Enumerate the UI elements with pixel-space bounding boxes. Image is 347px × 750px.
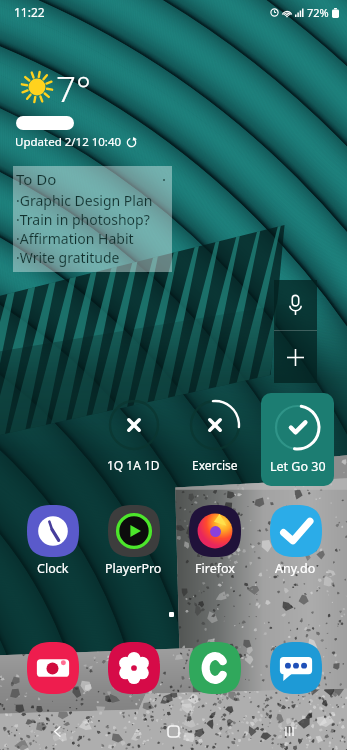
button[interactable]: 1Q 1A 1D xyxy=(93,399,174,473)
staticText: 1Q 1A 1D xyxy=(107,457,160,473)
button[interactable]: Let Go 30 xyxy=(261,393,334,486)
staticText: ·Graphic Design Plan xyxy=(16,191,153,210)
staticText: 11:22 xyxy=(14,4,45,20)
button[interactable]: Phone xyxy=(174,642,255,694)
button[interactable]: To Do xyxy=(13,166,172,272)
button[interactable]: Messages xyxy=(255,642,336,694)
button[interactable]: Voice search xyxy=(274,280,317,330)
staticText: Exercise xyxy=(192,457,238,473)
staticText: To Do xyxy=(16,169,57,189)
button[interactable]: 7° xyxy=(56,65,91,113)
staticText: ·Affirmation Habit xyxy=(16,229,134,248)
staticText: ·Train in photoshop? xyxy=(16,210,150,229)
button[interactable]: PlayerPro xyxy=(93,505,174,577)
button[interactable]: Clock xyxy=(12,505,93,577)
staticText: 72% xyxy=(307,5,329,20)
button[interactable]: Exercise xyxy=(174,399,255,473)
staticText: PlayerPro xyxy=(105,560,162,577)
button[interactable] xyxy=(16,116,74,130)
button[interactable]: Recents xyxy=(231,712,347,750)
button[interactable]: Camera xyxy=(12,642,93,694)
button[interactable]: Firefox xyxy=(174,505,255,577)
staticText: Updated 2/12 10:40 xyxy=(15,134,122,150)
button[interactable]: Updated 2/12 10:40 xyxy=(15,134,137,150)
button[interactable]: Gallery xyxy=(93,642,174,694)
staticText: ·Write gratitude xyxy=(16,248,120,267)
staticText: Any.do xyxy=(275,560,316,577)
button[interactable]: Back xyxy=(0,712,115,750)
staticText: Firefox xyxy=(195,560,235,577)
staticText: · xyxy=(162,169,167,189)
staticText: Let Go 30 xyxy=(270,458,326,475)
button[interactable]: Home xyxy=(115,712,231,750)
button[interactable]: Add xyxy=(274,331,317,383)
button[interactable]: Any.do xyxy=(255,505,336,577)
staticText: Clock xyxy=(37,560,69,577)
